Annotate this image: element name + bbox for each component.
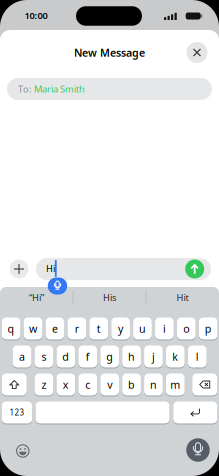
button[interactable]: j	[144, 345, 163, 367]
button[interactable]	[173, 401, 217, 423]
button[interactable]: v	[100, 373, 119, 395]
staticText: His	[103, 291, 116, 304]
button[interactable]: o	[177, 317, 196, 339]
staticText: h	[128, 349, 135, 364]
staticText: m	[170, 377, 180, 392]
button[interactable]: m	[166, 373, 185, 395]
staticText: w	[29, 321, 37, 336]
button[interactable]: n	[144, 373, 163, 395]
staticText: l	[196, 349, 199, 364]
button[interactable]: z	[35, 373, 53, 395]
button[interactable]: q	[2, 317, 20, 339]
button[interactable]: t	[89, 317, 108, 339]
button[interactable]: f	[78, 345, 97, 367]
staticText: j	[152, 349, 155, 364]
button[interactable]: i	[155, 317, 174, 339]
staticText: Hi	[46, 262, 55, 275]
staticText: o	[183, 321, 189, 336]
button[interactable]	[185, 259, 204, 278]
button[interactable]: u	[133, 317, 152, 339]
button[interactable]: e	[45, 317, 64, 339]
staticText: s	[41, 349, 46, 364]
staticText: i	[163, 321, 166, 336]
staticText: p	[205, 321, 212, 336]
staticText: b	[128, 377, 135, 392]
staticText: x	[63, 377, 69, 392]
button[interactable]: “Hi”	[1, 288, 71, 306]
button[interactable]: a	[13, 345, 31, 367]
button[interactable]	[35, 401, 169, 423]
button[interactable]: g	[100, 345, 119, 367]
button[interactable]: l	[188, 345, 207, 367]
staticText: t	[97, 321, 101, 336]
staticText: y	[118, 321, 123, 336]
button[interactable]	[9, 259, 28, 278]
button[interactable]	[17, 445, 29, 457]
staticText: To:	[18, 83, 34, 95]
button[interactable]: h	[122, 345, 141, 367]
staticText: f	[86, 349, 90, 364]
button[interactable]: 123	[2, 401, 32, 423]
staticText: New Message	[74, 45, 145, 60]
button[interactable]: His	[74, 288, 144, 306]
staticText: v	[107, 377, 112, 392]
button[interactable]	[48, 277, 67, 294]
staticText: g	[106, 349, 113, 364]
staticText: c	[85, 377, 90, 392]
staticText: 10:00	[24, 9, 47, 22]
button[interactable]: To:	[0, 78, 219, 100]
staticText: a	[19, 349, 25, 364]
staticText: z	[41, 377, 46, 392]
staticText: Hit	[176, 291, 188, 304]
button[interactable]: y	[111, 317, 130, 339]
staticText: e	[52, 321, 58, 336]
button[interactable]: Hit	[147, 288, 217, 306]
staticText: k	[172, 349, 178, 364]
button[interactable]: b	[122, 373, 141, 395]
button[interactable]: x	[56, 373, 75, 395]
staticText: 123	[9, 407, 24, 418]
button[interactable]: c	[78, 373, 97, 395]
button[interactable]	[36, 258, 211, 280]
button[interactable]: p	[199, 317, 217, 339]
button[interactable]: w	[24, 317, 42, 339]
button[interactable]: s	[35, 345, 53, 367]
button[interactable]	[2, 373, 27, 395]
staticText: r	[75, 321, 79, 336]
button[interactable]: d	[56, 345, 75, 367]
button[interactable]	[186, 438, 210, 462]
staticText: “Hi”	[29, 291, 44, 304]
button[interactable]: k	[166, 345, 185, 367]
button[interactable]: r	[67, 317, 86, 339]
staticText: u	[139, 321, 146, 336]
button[interactable]	[186, 42, 207, 63]
staticText: Maria Smith	[34, 83, 85, 95]
staticText: d	[62, 349, 69, 364]
button[interactable]	[192, 373, 217, 395]
staticText: n	[150, 377, 157, 392]
staticText: q	[8, 321, 15, 336]
